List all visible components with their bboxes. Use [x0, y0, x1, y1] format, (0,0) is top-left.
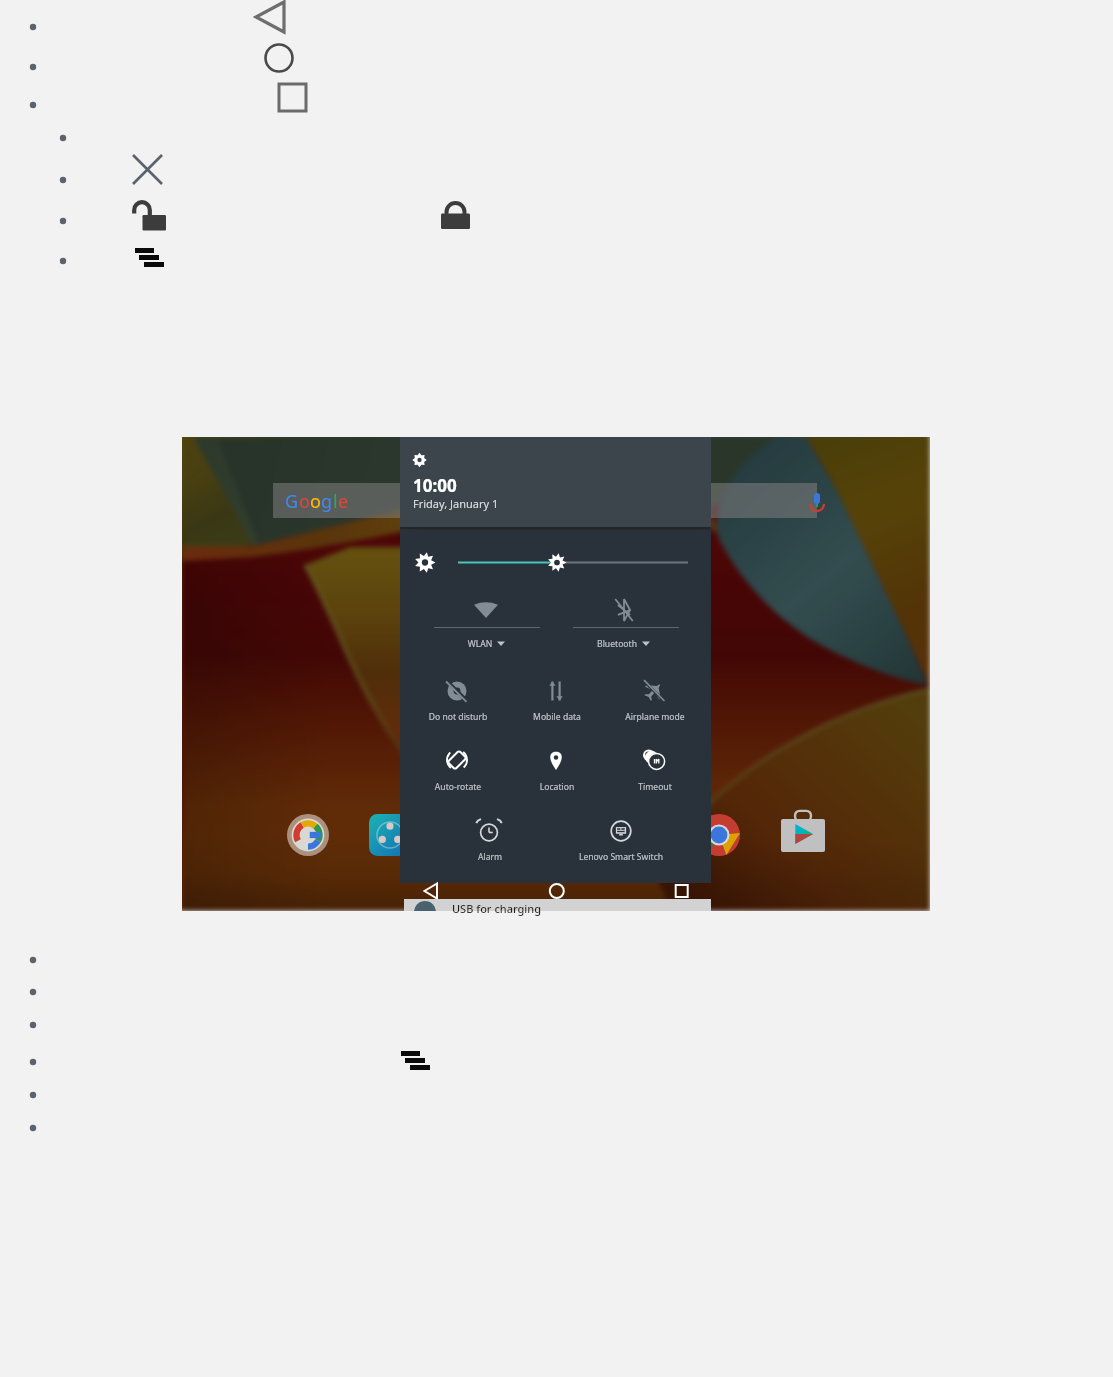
staticText: Timeout — [585, 781, 725, 793]
staticText: e — [338, 489, 349, 514]
staticText: o — [299, 489, 310, 514]
staticText: Bluetooth — [547, 638, 687, 650]
staticText: Alarm — [420, 851, 560, 863]
staticText: Do not disturb — [388, 711, 528, 723]
staticText: o — [310, 489, 321, 514]
staticText: Lenovo Smart Switch — [551, 851, 691, 863]
staticText: l — [333, 489, 338, 514]
staticText: Friday, January 1 — [413, 496, 499, 511]
staticText: 10:00 — [413, 474, 457, 497]
staticText: Mobile data — [487, 711, 627, 723]
staticText: Auto-rotate — [388, 781, 528, 793]
staticText: Airplane mode — [585, 711, 725, 723]
staticText: G — [285, 489, 299, 514]
staticText: WLAN — [410, 638, 550, 650]
staticText: g — [321, 489, 333, 514]
staticText: Location — [487, 781, 627, 793]
staticText: USB for charging — [452, 901, 542, 916]
